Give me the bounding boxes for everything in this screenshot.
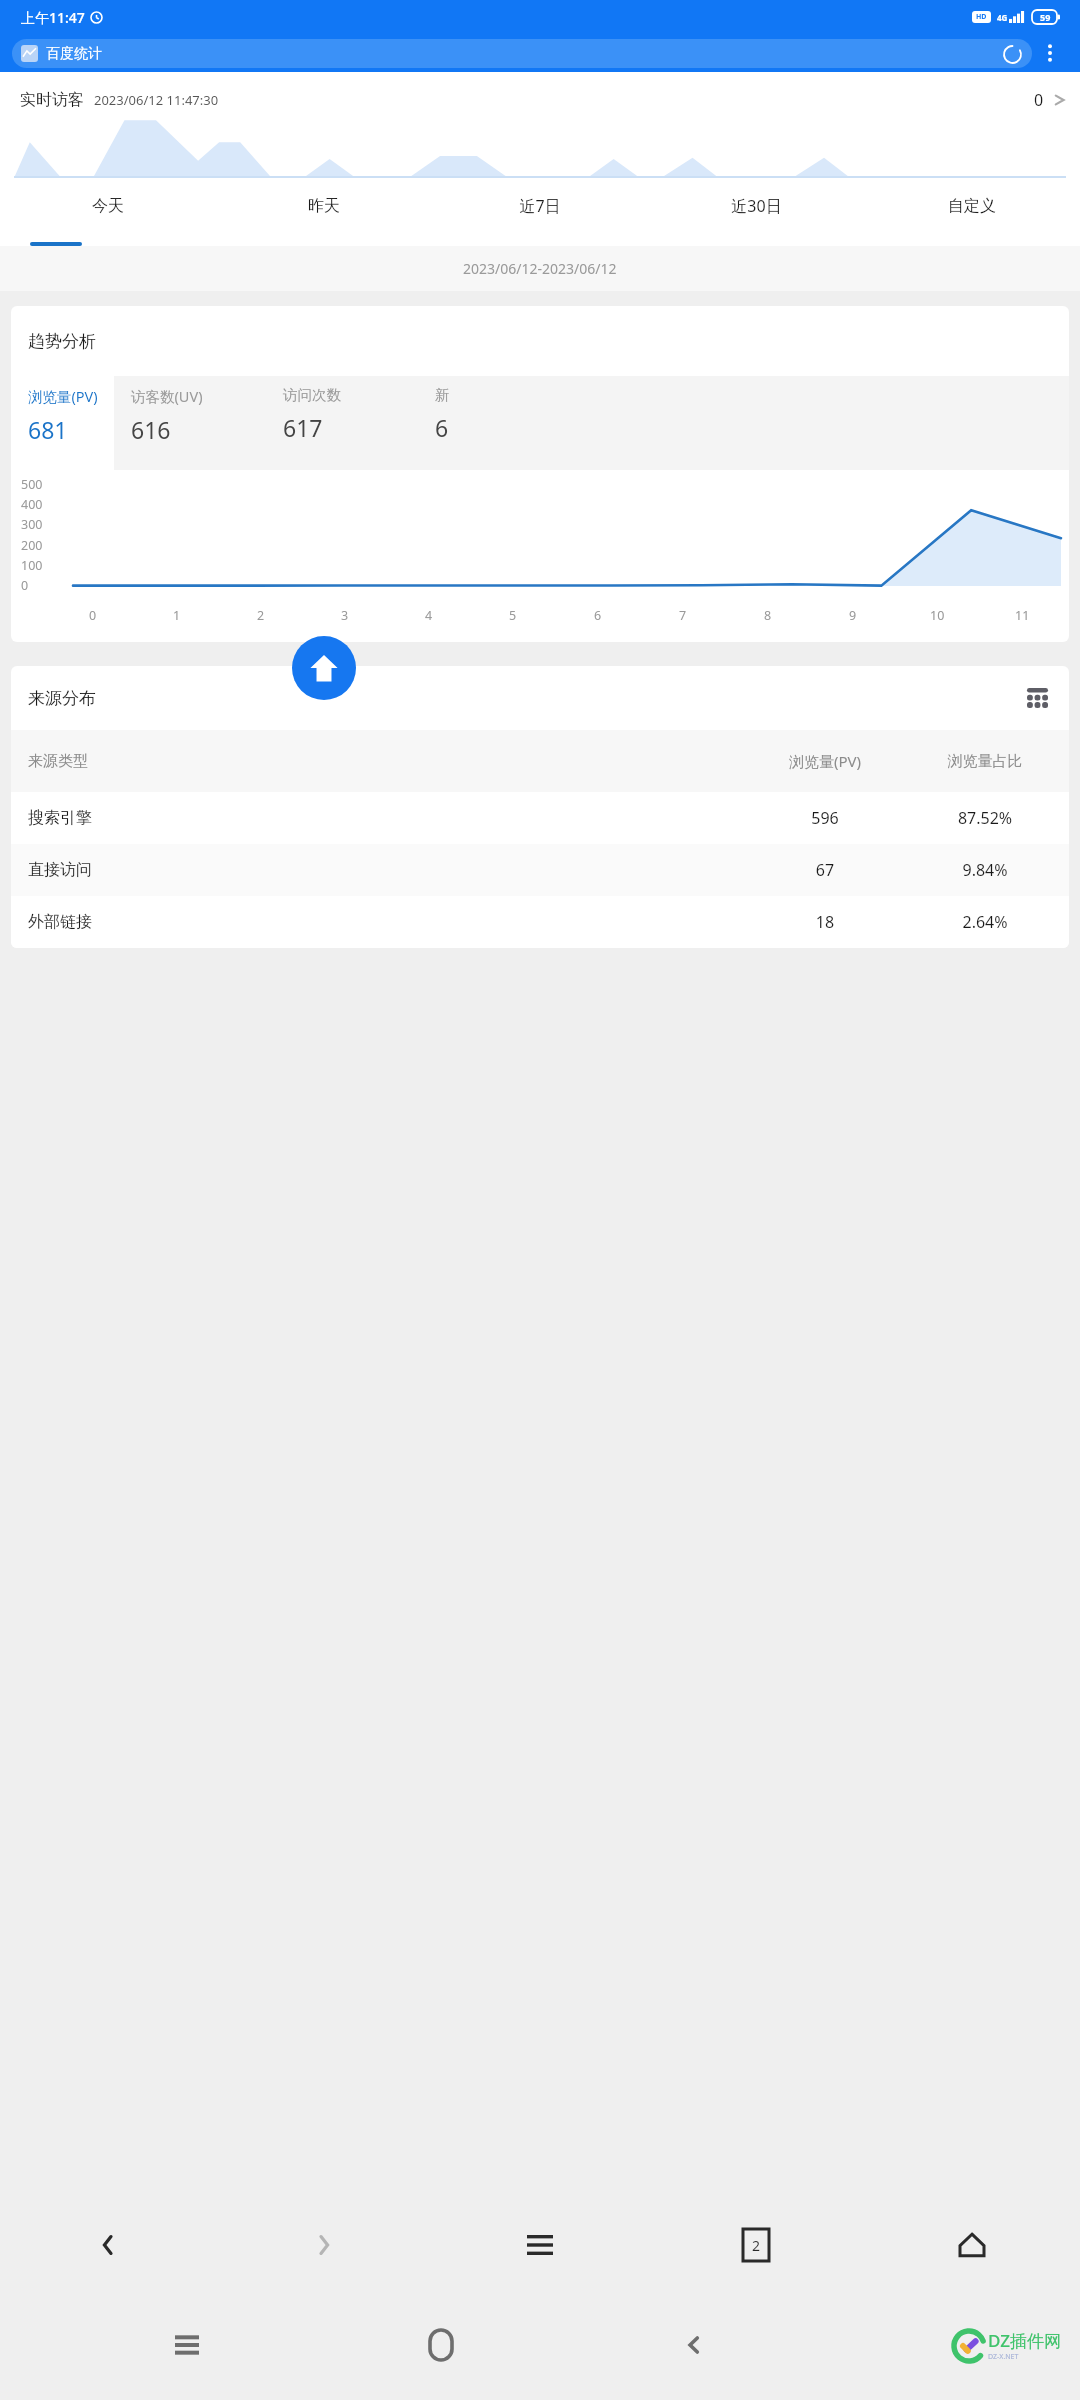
button[interactable]: 直接访问 [11,844,1069,896]
staticText: 2023/06/12-2023/06/12 [463,259,617,278]
staticText: 0 [1034,89,1044,111]
button[interactable]: 百度统计 [12,39,1032,68]
staticText: 11 [1015,607,1030,624]
staticText: 6 [435,412,449,443]
staticText: 8 [764,607,772,624]
staticText: 1 [173,607,181,624]
staticText: 自定义 [948,196,996,216]
staticText: 681 [28,414,68,445]
staticText: 616 [131,414,171,445]
staticText: 7 [679,607,687,624]
staticText: 0 [21,577,29,594]
staticText: 浏览量(PV) [745,751,905,771]
button[interactable]: 昨天 [216,178,432,246]
staticText: 3 [341,607,349,624]
staticText: 67 [745,859,905,881]
button[interactable]: 实时访客 [0,72,1080,178]
staticText: 访客数(UV) [131,386,203,406]
button[interactable]: 搜索引擎 [11,792,1069,844]
staticText: 来源类型 [28,752,198,771]
staticText: 500 [21,476,43,493]
staticText: 18 [745,911,905,933]
button[interactable]: Home [314,2290,567,2400]
staticText: 上午11:47 [21,8,85,27]
button[interactable]: Home [864,2200,1080,2290]
staticText: 外部链接 [28,912,198,932]
staticText: 300 [21,516,43,533]
button[interactable]: 今天 [0,178,216,246]
button[interactable]: 近30日 [648,178,864,246]
button[interactable]: 外部链接 [11,896,1069,948]
staticText: 59 [1040,11,1051,23]
staticText: 2.64% [905,911,1065,933]
button[interactable]: Menu [432,2200,648,2290]
staticText: 访问次数 [283,386,341,404]
staticText: 2 [257,607,265,624]
staticText: 2023/06/12 11:47:30 [94,91,219,109]
button[interactable]: Grid view [1022,683,1052,713]
staticText: 昨天 [308,196,340,216]
staticText: 新 [435,386,450,404]
staticText: 近7日 [519,195,561,217]
button[interactable]: Refresh [1001,43,1023,65]
staticText: 100 [21,557,43,574]
staticText: 9.84% [905,859,1065,881]
button[interactable]: 浏览量(PV) [11,376,114,470]
button[interactable]: Forward [216,2200,432,2290]
staticText: 0 [89,607,97,624]
staticText: 今天 [92,196,124,216]
staticText: 百度统计 [46,45,102,63]
staticText: HD [976,12,987,22]
staticText: 2 [752,2236,761,2255]
button[interactable]: Back [567,2290,820,2400]
staticText: 实时访客 [20,90,84,110]
staticText: 5 [509,607,517,624]
staticText: 400 [21,496,43,513]
staticText: 搜索引擎 [28,808,198,828]
staticText: DZ-X.NET [988,2352,1019,2362]
button[interactable]: 访问次数 [266,376,418,470]
button[interactable]: Tabs: 2 [648,2200,864,2290]
staticText: 4G [997,12,1008,23]
button[interactable]: Scroll to top [292,636,356,700]
staticText: 10 [930,607,945,624]
staticText: DZ插件网 [988,2329,1062,2352]
button[interactable]: Back [0,2200,216,2290]
button[interactable]: 访客数(UV) [114,376,266,470]
staticText: 4 [425,607,433,624]
staticText: 浏览量(PV) [28,386,98,406]
staticText: 近30日 [731,195,782,217]
staticText: 6 [594,607,602,624]
staticText: 趋势分析 [28,331,96,352]
button[interactable]: Recents [60,2290,314,2400]
button[interactable]: 新 [418,376,1069,470]
staticText: 87.52% [905,807,1065,829]
staticText: 596 [745,807,905,829]
staticText: 617 [283,412,323,443]
button[interactable]: 自定义 [864,178,1080,246]
staticText: 直接访问 [28,860,198,880]
staticText: 浏览量占比 [905,752,1065,771]
button[interactable]: 近7日 [432,178,648,246]
staticText: 200 [21,537,43,554]
button[interactable]: More options [1032,34,1068,72]
staticText: 来源分布 [28,688,96,709]
staticText: 9 [849,607,857,624]
